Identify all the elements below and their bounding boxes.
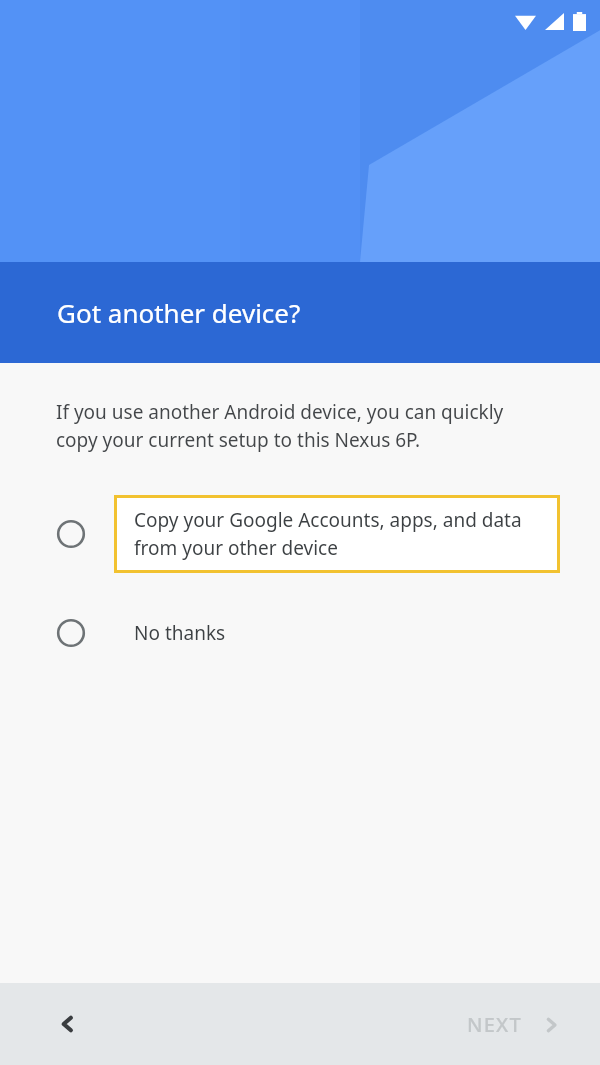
button[interactable]: Copy your Google Accounts, apps, and dat… [0, 495, 600, 573]
staticText: NEXT [467, 1011, 522, 1038]
staticText: Got another device? [57, 295, 301, 330]
button[interactable]: No thanks [0, 608, 600, 658]
staticText: If you use another Android device, you c… [56, 399, 544, 453]
staticText: Copy your Google Accounts, apps, and dat… [134, 507, 540, 561]
staticText: No thanks [134, 620, 226, 646]
button[interactable]: NEXT [455, 1001, 574, 1048]
button[interactable]: Back [42, 998, 94, 1050]
